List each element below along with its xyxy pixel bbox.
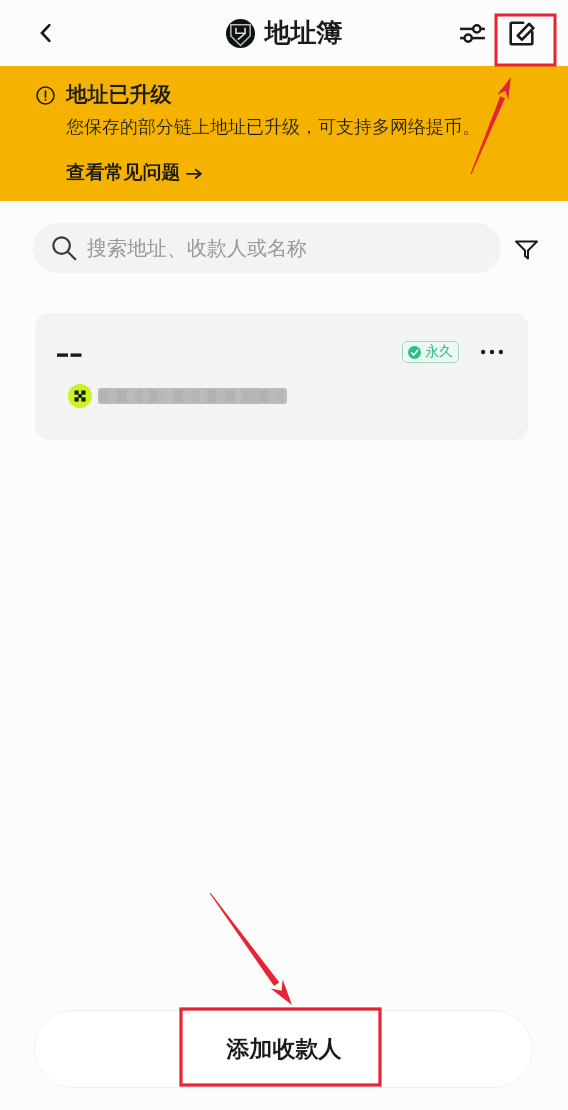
button[interactable]: More options	[476, 336, 508, 368]
button[interactable]: 查看常见问题	[66, 161, 202, 185]
staticText: 查看常见问题	[66, 161, 180, 185]
staticText: 您保存的部分链上地址已升级，可支持多网络提币。	[66, 116, 480, 139]
staticText: 地址簿	[264, 17, 342, 50]
button[interactable]: 永久	[35, 313, 528, 440]
staticText: 搜索地址、收款人或名称	[87, 236, 307, 261]
button[interactable]: Back	[26, 13, 66, 53]
button[interactable]: 添加收款人	[34, 1010, 533, 1088]
button[interactable]: Settings	[451, 12, 493, 54]
staticText: 添加收款人	[226, 1035, 341, 1064]
staticText: 永久	[425, 343, 453, 361]
button[interactable]: Edit	[500, 12, 542, 54]
button[interactable]: Filter	[501, 223, 551, 273]
button[interactable]: 搜索地址、收款人或名称	[33, 223, 501, 273]
staticText: 地址已升级	[66, 82, 171, 108]
